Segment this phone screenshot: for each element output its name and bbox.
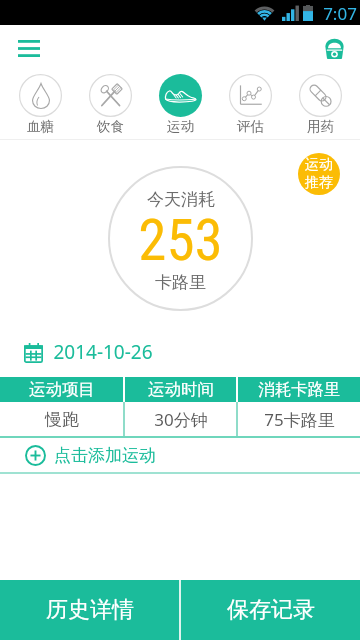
button[interactable]: 评估 xyxy=(215,65,285,140)
staticText: 推荐 xyxy=(305,174,333,192)
button[interactable]: 点击添加运动 xyxy=(25,438,360,472)
button[interactable]: 用药 xyxy=(285,65,355,140)
staticText: 运动时间 xyxy=(148,379,214,400)
staticText: 2014-10-26 xyxy=(53,339,153,365)
staticText: 运动 xyxy=(305,156,333,174)
staticText: 运动 xyxy=(167,118,194,135)
staticText: 7:07 xyxy=(323,2,357,25)
button[interactable]: 运动 xyxy=(298,153,340,195)
staticText: 30分钟 xyxy=(154,408,208,431)
button[interactable]: Menu xyxy=(10,33,48,63)
button[interactable]: 2014-10-26 xyxy=(24,337,153,367)
staticText: 消耗卡路里 xyxy=(258,379,341,400)
staticText: 点击添加运动 xyxy=(54,445,156,466)
button[interactable]: 运动 xyxy=(145,65,215,140)
staticText: 卡路里 xyxy=(155,272,206,293)
staticText: 保存记录 xyxy=(227,596,315,624)
staticText: 慢跑 xyxy=(45,409,79,430)
staticText: 253 xyxy=(138,207,223,274)
staticText: 饮食 xyxy=(97,118,124,135)
staticText: 历史详情 xyxy=(46,596,134,624)
button[interactable]: 血糖 xyxy=(6,65,75,140)
staticText: 75卡路里 xyxy=(264,408,335,431)
staticText: 运动项目 xyxy=(29,379,95,400)
staticText: 用药 xyxy=(307,118,334,135)
button[interactable]: 饮食 xyxy=(75,65,145,140)
staticText: 评估 xyxy=(237,118,264,135)
staticText: 血糖 xyxy=(27,118,54,135)
button[interactable]: 保存记录 xyxy=(181,580,360,640)
button[interactable]: Shopping basket xyxy=(314,29,354,65)
button[interactable]: 历史详情 xyxy=(0,580,179,640)
staticText: 今天消耗 xyxy=(147,189,215,210)
